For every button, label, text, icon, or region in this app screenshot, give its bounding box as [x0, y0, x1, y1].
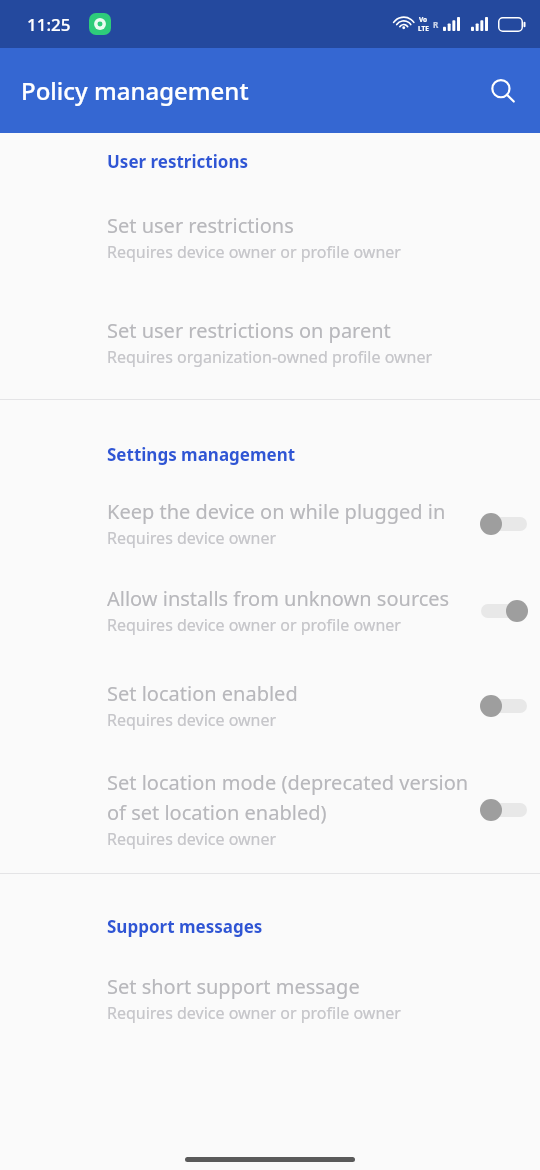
staticText: Set location enabled — [107, 680, 298, 707]
staticText: Requires organization-owned profile owne… — [107, 346, 433, 368]
staticText: Set user restrictions on parent — [107, 317, 391, 344]
button[interactable]: Set user restrictions — [0, 173, 540, 263]
staticText: Requires device owner — [107, 527, 277, 549]
button[interactable]: Keep the device on while plugged in — [478, 504, 530, 544]
staticText: LTE — [418, 24, 429, 33]
staticText: Allow installs from unknown sources — [107, 585, 450, 612]
button[interactable]: Set short support message — [0, 938, 540, 1024]
staticText: Set user restrictions — [107, 212, 294, 239]
button[interactable]: Set location mode (deprecated version of… — [478, 790, 530, 830]
button[interactable]: Set location mode (deprecated version of… — [0, 731, 540, 850]
staticText: Vo — [419, 15, 428, 24]
staticText: Set short support message — [107, 973, 360, 1000]
button[interactable]: Set location enabled — [478, 686, 530, 726]
staticText: Requires device owner — [107, 828, 277, 850]
staticText: Set location mode (deprecated version of… — [107, 769, 472, 826]
button[interactable]: Search — [479, 67, 527, 115]
staticText: Requires device owner or profile owner — [107, 241, 401, 263]
staticText: Support messages — [107, 915, 263, 938]
staticText: Requires device owner — [107, 709, 277, 731]
button[interactable]: Keep the device on while plugged in — [0, 466, 540, 549]
staticText: Settings management — [107, 443, 296, 466]
staticText: Keep the device on while plugged in — [107, 498, 446, 525]
staticText: 11:25 — [27, 13, 71, 36]
button[interactable]: Set location enabled — [0, 636, 540, 731]
staticText: Requires device owner or profile owner — [107, 1002, 401, 1024]
button[interactable]: Allow installs from unknown sources — [478, 591, 530, 631]
staticText: User restrictions — [107, 150, 248, 173]
staticText: R — [433, 19, 439, 30]
button[interactable]: Set user restrictions on parent — [0, 263, 540, 368]
staticText: Requires device owner or profile owner — [107, 614, 401, 636]
button[interactable]: Allow installs from unknown sources — [0, 549, 540, 636]
staticText: Policy management — [21, 74, 249, 107]
